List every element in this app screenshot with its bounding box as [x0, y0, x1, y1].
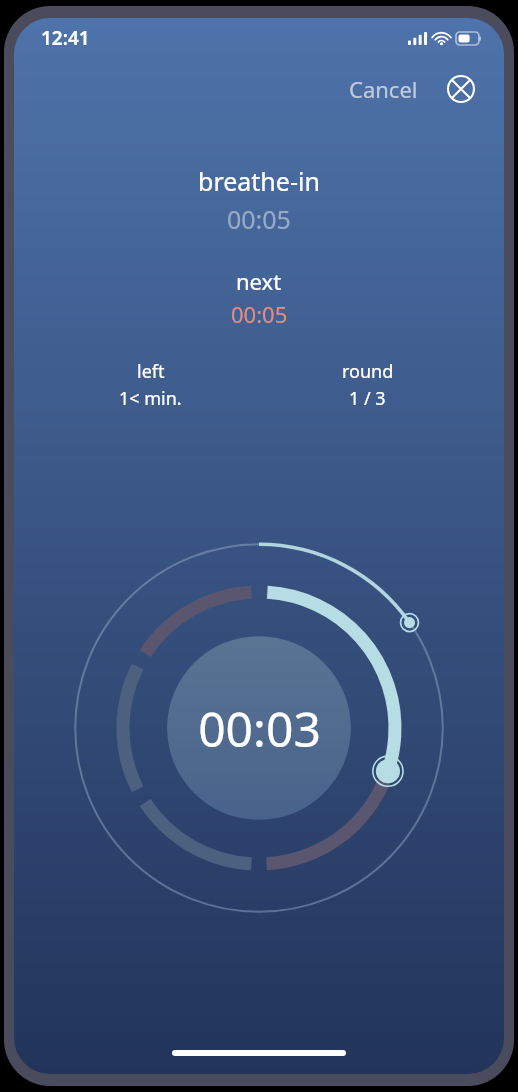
staticText: 1 / 3	[349, 386, 386, 411]
staticText: 1< min.	[119, 386, 182, 411]
staticText: left	[137, 359, 165, 384]
staticText: 00:05	[227, 202, 291, 236]
staticText: next	[236, 266, 282, 296]
button[interactable]: Close	[442, 70, 480, 108]
button[interactable]: Cancel	[343, 70, 424, 108]
staticText: round	[342, 359, 394, 384]
staticText: 00:03	[198, 696, 321, 761]
staticText: breathe-in	[198, 164, 320, 198]
staticText: Cancel	[349, 74, 418, 104]
staticText: 12:41	[41, 25, 90, 51]
staticText: 00:05	[231, 299, 288, 329]
